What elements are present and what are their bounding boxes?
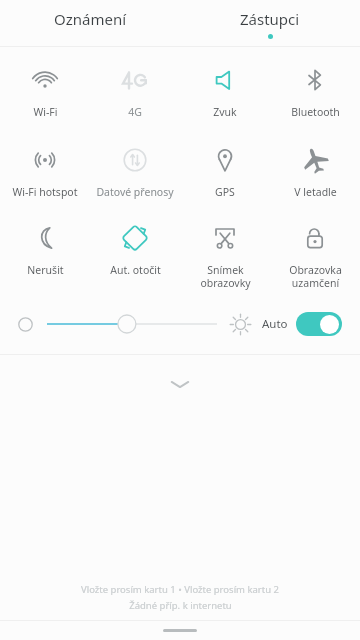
button[interactable]: Zástupci xyxy=(180,0,360,47)
button[interactable]: Bluetooth xyxy=(270,63,360,121)
other: Low brightness xyxy=(18,317,33,332)
staticText: Žádné příp. k internetu xyxy=(129,599,232,612)
staticText: Zástupci xyxy=(240,9,300,29)
button[interactable]: Snímek obrazovky xyxy=(180,221,270,292)
button[interactable]: Aut. otočit xyxy=(90,221,180,279)
staticText: Oznámení xyxy=(54,9,127,29)
button[interactable]: Oznámení xyxy=(0,0,180,47)
button[interactable]: Brightness xyxy=(47,313,217,335)
staticText: Nerušit xyxy=(27,263,64,277)
button[interactable]: Auto brightness toggle xyxy=(296,312,342,336)
staticText: GPS xyxy=(215,185,235,199)
button[interactable]: V letadle xyxy=(270,143,360,201)
button[interactable]: GPS xyxy=(180,143,270,201)
button[interactable]: 4G xyxy=(90,63,180,121)
staticText: Wi-Fi hotspot xyxy=(12,185,78,199)
staticText: Bluetooth xyxy=(291,105,340,119)
button[interactable]: Nerušit xyxy=(0,221,90,279)
staticText: V letadle xyxy=(294,185,337,199)
button[interactable]: Wi-Fi hotspot xyxy=(0,143,90,201)
other: High brightness xyxy=(231,315,250,334)
button[interactable]: Obrazovka uzamčení xyxy=(270,221,360,292)
button[interactable]: Wi-Fi xyxy=(0,63,90,121)
button[interactable]: Datové přenosy xyxy=(90,143,180,201)
button[interactable]: Expand xyxy=(0,371,360,397)
staticText: Obrazovka uzamčení xyxy=(289,263,342,290)
staticText: Zvuk xyxy=(213,105,237,119)
staticText: Vložte prosím kartu 1 • Vložte prosím ka… xyxy=(81,583,279,596)
staticText: Auto xyxy=(262,316,288,332)
button[interactable]: Zvuk xyxy=(180,63,270,121)
staticText: Snímek obrazovky xyxy=(200,263,251,290)
staticText: Aut. otočit xyxy=(110,263,161,277)
staticText: 4G xyxy=(128,105,142,119)
staticText: Wi-Fi xyxy=(33,105,58,119)
staticText: Datové přenosy xyxy=(96,185,174,199)
